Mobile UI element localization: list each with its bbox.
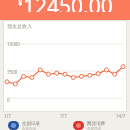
button[interactable]: 网贷消费	[65, 121, 130, 130]
staticText: 查看详情	[87, 127, 101, 130]
staticText: 14/7	[116, 113, 126, 119]
button[interactable]: 交易记录	[0, 121, 65, 130]
staticText: ¥	[18, 0, 23, 8]
staticText: 网贷消费	[87, 121, 105, 127]
staticText: 7500	[7, 69, 18, 75]
staticText: 0	[7, 97, 10, 103]
staticText: 查看详情	[22, 127, 36, 130]
staticText: 12450.00	[23, 0, 113, 12]
staticText: 7/7	[60, 113, 67, 119]
staticText: 1/7	[4, 113, 11, 119]
staticText: 交易记录	[22, 121, 40, 127]
staticText: 15000	[7, 41, 20, 47]
staticText: 现金总收入	[7, 23, 32, 29]
